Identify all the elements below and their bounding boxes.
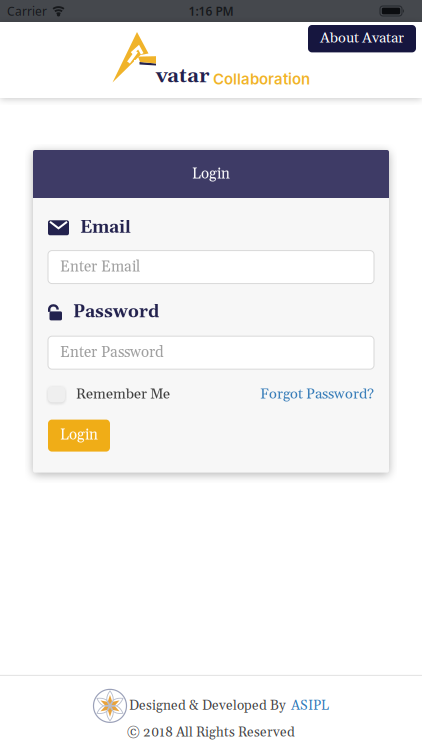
staticText: © 2018 All Rights Reserved <box>127 724 295 741</box>
button[interactable]: Login <box>48 420 110 452</box>
staticText: 1:16 PM <box>188 3 233 19</box>
staticText: Enter Email <box>60 258 140 277</box>
staticText: Collaboration <box>209 70 310 88</box>
staticText: Remember Me <box>76 385 170 404</box>
staticText: Enter Password <box>60 343 164 362</box>
staticText: Designed & Developed By <box>129 697 289 714</box>
staticText: Carrier <box>7 3 47 19</box>
button[interactable]: Forgot Password? <box>260 385 374 404</box>
button[interactable]: About Avatar <box>308 25 416 52</box>
button[interactable]: ASIPL <box>291 697 329 714</box>
staticText: About Avatar <box>320 29 404 47</box>
staticText: ASIPL <box>291 697 329 714</box>
staticText: vatar <box>156 64 209 89</box>
staticText: Forgot Password? <box>260 385 374 404</box>
staticText: Password <box>73 302 159 323</box>
button[interactable]: Enter Email <box>48 251 374 284</box>
staticText: Login <box>192 164 230 183</box>
staticText: Login <box>60 426 98 445</box>
staticText: Email <box>80 217 131 239</box>
button[interactable]: Enter Password <box>48 336 374 369</box>
